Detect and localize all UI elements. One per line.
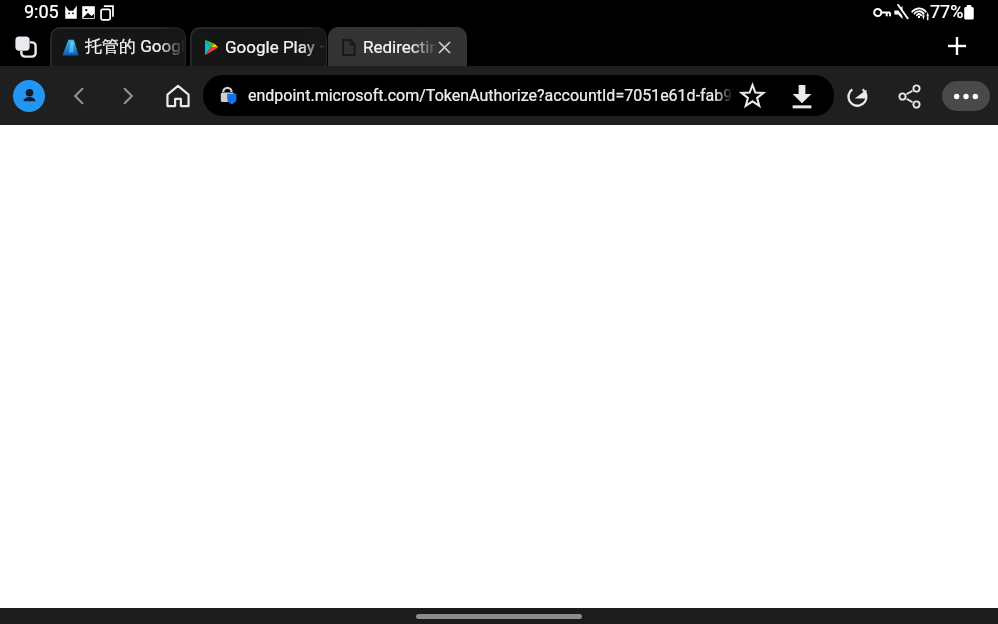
staticText: endpoint.microsoft.com/TokenAuthorize?ac… [248,86,733,105]
button[interactable]: Redirecting… [328,27,467,66]
button[interactable]: Reload [842,79,876,113]
button[interactable]: Google Play – Apps [190,27,327,66]
button[interactable]: More options [942,81,990,111]
staticText: Redirecting… [363,37,437,57]
button[interactable]: Home [161,79,195,113]
button[interactable]: Share [892,79,926,113]
button[interactable]: Profile [13,80,45,112]
button[interactable]: Tab switcher [5,26,45,66]
staticText: 77% [930,1,964,22]
button[interactable]: Downloads [777,75,826,116]
staticText: 9:05 [24,1,59,22]
button[interactable]: Back [62,79,96,113]
button[interactable]: Forward [111,79,145,113]
button[interactable]: Close tab [432,35,456,59]
button[interactable]: 托管的 Google Play [50,27,186,66]
button[interactable]: Bookmark [728,75,777,116]
staticText: 托管的 Google Play [85,36,185,57]
button[interactable]: New tab [936,26,978,66]
button[interactable]: endpoint.microsoft.com/TokenAuthorize?ac… [203,75,834,116]
staticText: Google Play – Apps [225,37,326,57]
